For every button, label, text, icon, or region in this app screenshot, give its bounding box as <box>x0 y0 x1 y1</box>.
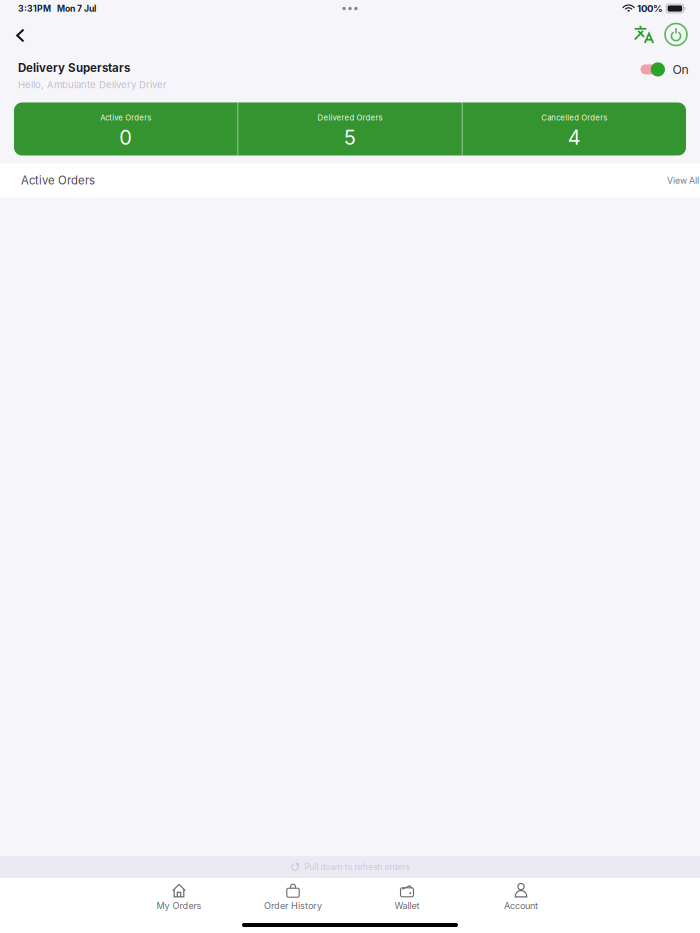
button[interactable]: Translate <box>629 22 658 47</box>
staticText: Hello, Ambulante Delivery Driver <box>18 79 167 90</box>
staticText: 3:31PM <box>18 3 51 14</box>
button[interactable]: View All <box>667 175 699 186</box>
staticText: Active Orders <box>100 113 151 122</box>
staticText: On <box>672 62 688 77</box>
staticText: Cancelled Orders <box>541 113 607 122</box>
staticText: Account <box>504 900 538 911</box>
button[interactable]: Back <box>0 23 34 46</box>
staticText: My Orders <box>156 900 201 911</box>
staticText: 5 <box>344 125 356 149</box>
button[interactable]: On <box>640 62 688 77</box>
button[interactable]: Power <box>658 20 700 49</box>
button[interactable]: Cancelled Orders <box>463 102 686 155</box>
staticText: 4 <box>568 125 581 149</box>
staticText: Mon 7 Jul <box>57 3 96 14</box>
button[interactable]: Delivered Orders <box>238 102 462 155</box>
staticText: Delivered Orders <box>317 113 382 122</box>
button[interactable]: Order History <box>236 878 350 911</box>
staticText: 100% <box>637 3 663 14</box>
button[interactable]: Wallet <box>350 878 464 911</box>
button[interactable]: Active Orders <box>14 102 237 155</box>
staticText: Active Orders <box>21 174 95 187</box>
staticText: Wallet <box>394 900 419 911</box>
staticText: Pull down to refresh orders <box>304 862 409 872</box>
staticText: Order History <box>264 900 322 911</box>
staticText: Delivery Superstars <box>18 61 130 75</box>
button[interactable]: Account <box>464 878 578 911</box>
staticText: View All <box>667 175 699 186</box>
button[interactable]: My Orders <box>122 878 236 911</box>
staticText: 0 <box>119 125 132 149</box>
